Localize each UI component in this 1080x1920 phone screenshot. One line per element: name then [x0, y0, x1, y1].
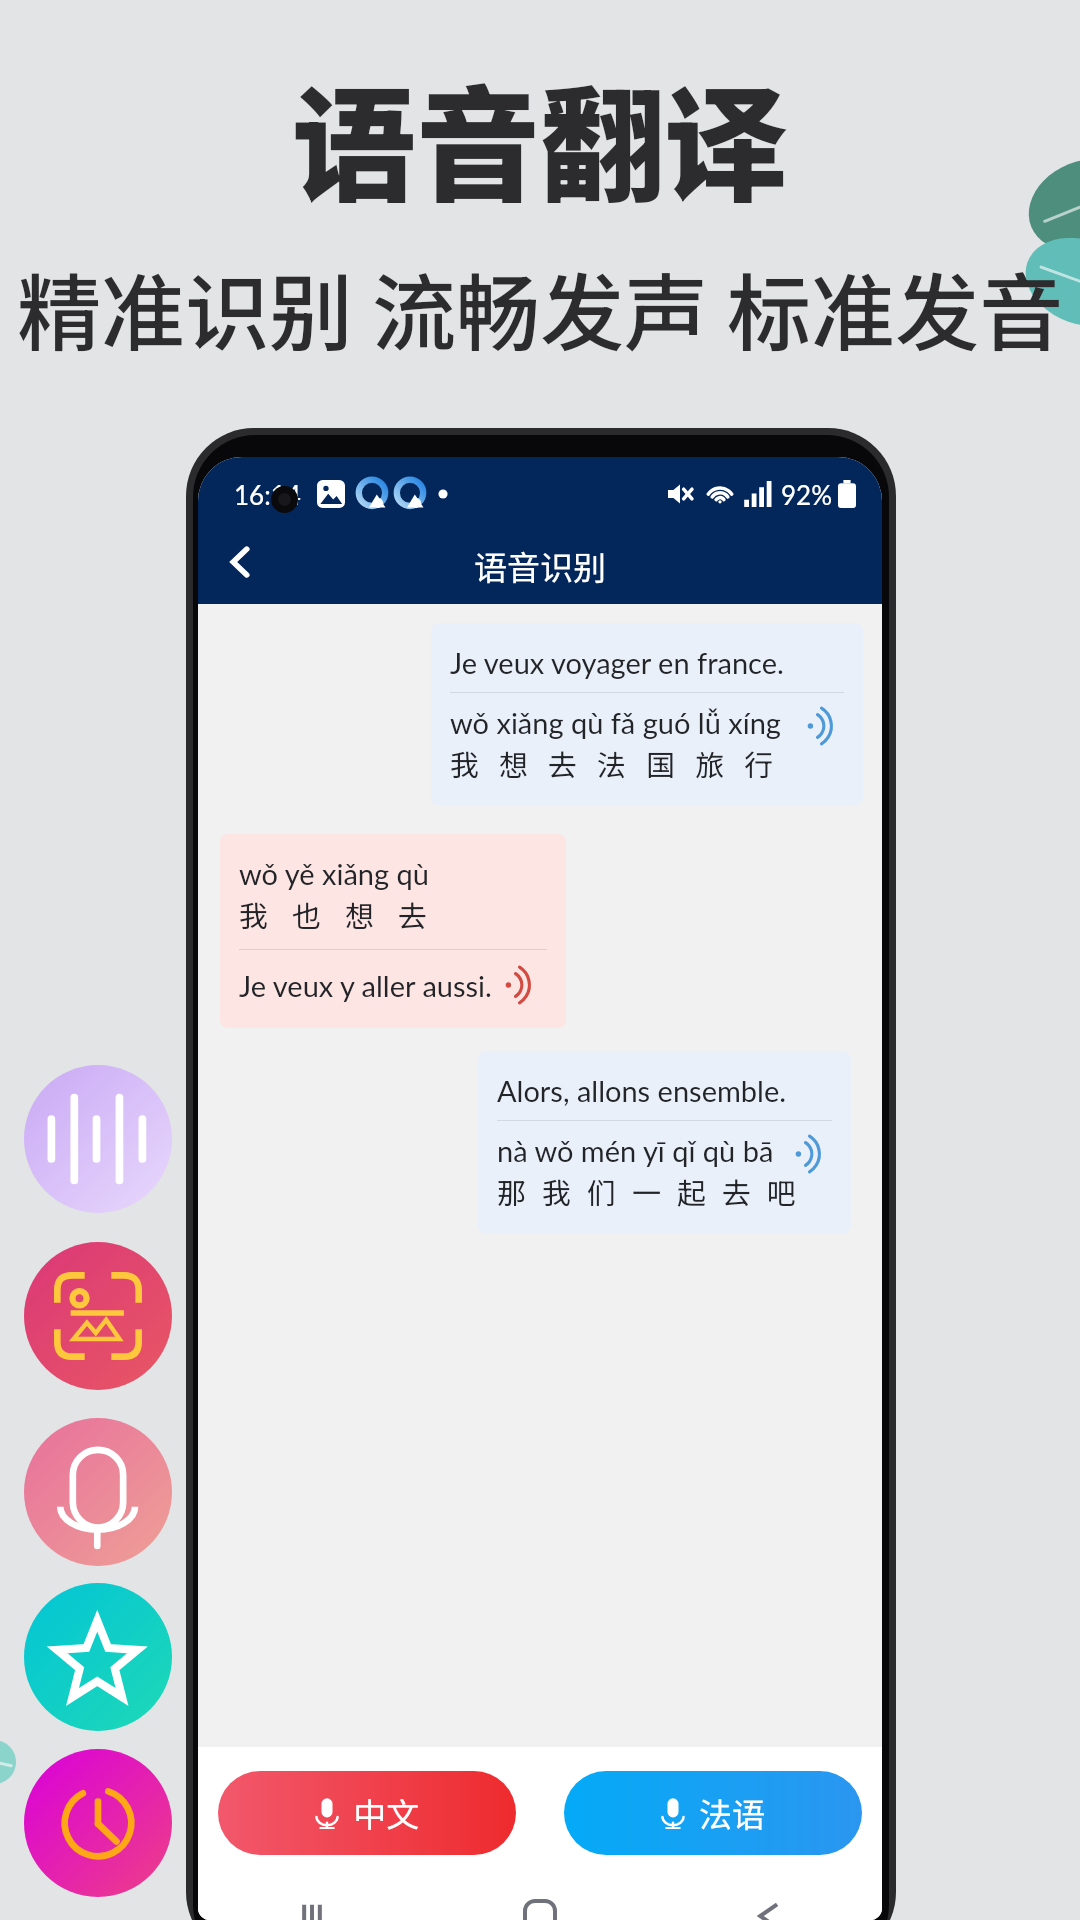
button[interactable]: 法语	[564, 1771, 862, 1855]
button[interactable]: Play audio	[802, 705, 844, 747]
button[interactable]: 中文	[218, 1771, 516, 1855]
staticText: 法语	[699, 1789, 765, 1837]
button[interactable]: wǒ yě xiǎng qù	[220, 834, 566, 1028]
staticText: 我也想去	[239, 893, 452, 935]
staticText: 语音翻译	[0, 47, 1080, 227]
staticText: wǒ yě xiǎng qù	[239, 856, 429, 891]
staticText: 精准识别 流畅发声 标准发音	[0, 247, 1080, 369]
button[interactable]: Alors, allons ensemble.	[478, 1051, 851, 1234]
button[interactable]: Home	[512, 1894, 568, 1920]
button[interactable]: Go back	[740, 1894, 796, 1920]
staticText: 那我们一起去吧	[497, 1170, 813, 1212]
staticText: nà wǒ mén yī qǐ qù bā	[497, 1133, 774, 1168]
button[interactable]: Recents	[284, 1894, 340, 1920]
staticText: 中文	[353, 1789, 419, 1837]
button[interactable]: Play audio	[500, 964, 542, 1006]
staticText: Je veux voyager en france.	[450, 645, 784, 680]
button[interactable]: Voice input	[24, 1418, 172, 1566]
button[interactable]: Je veux voyager en france.	[431, 623, 863, 806]
staticText: Alors, allons ensemble.	[497, 1073, 787, 1108]
button[interactable]: Favorites	[24, 1583, 172, 1731]
staticText: Je veux y aller aussi.	[239, 968, 492, 1003]
button[interactable]: History	[24, 1749, 172, 1897]
staticText: 我想去法国旅行	[450, 742, 794, 784]
button[interactable]: Waveform	[24, 1065, 172, 1213]
button[interactable]: Play audio	[790, 1133, 832, 1175]
staticText: 语音识别	[474, 542, 606, 590]
staticText: 16:14	[234, 479, 301, 510]
staticText: wǒ xiǎng qù fǎ guó lǚ xíng	[450, 705, 781, 740]
button[interactable]: Back	[204, 526, 276, 598]
staticText: 92%	[781, 479, 832, 510]
button[interactable]: Scan text	[24, 1242, 172, 1390]
